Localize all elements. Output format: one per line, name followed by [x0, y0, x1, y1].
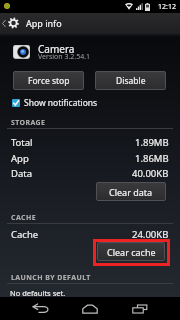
button[interactable]: Show notifications [9, 96, 104, 110]
staticText: App info [26, 17, 62, 29]
staticText: 1.86MB [135, 152, 169, 165]
staticText: 40.00KB [132, 167, 169, 180]
staticText: Cache [11, 228, 39, 241]
button[interactable]: Total [0, 134, 180, 149]
button[interactable]: Data [0, 165, 180, 180]
staticText: 24.00KB [132, 228, 169, 241]
staticText: Total [11, 136, 33, 149]
staticText: Camera [38, 42, 75, 56]
button[interactable]: Back [22, 297, 58, 320]
staticText: Clear data [109, 186, 153, 198]
button[interactable]: Cache [0, 226, 180, 241]
staticText: 12:12 [158, 2, 176, 12]
staticText: No defaults set. [10, 288, 66, 298]
button[interactable]: Clear data [96, 182, 166, 201]
staticText: Disable [116, 75, 146, 87]
staticText: LAUNCH BY DEFAULT [11, 273, 91, 283]
staticText: Data [11, 167, 33, 180]
staticText: Clear cache [107, 246, 156, 258]
button[interactable]: App [0, 150, 180, 165]
staticText: App [11, 152, 29, 165]
button[interactable]: Clear cache [97, 242, 165, 261]
button[interactable]: Disable [95, 71, 166, 90]
staticText: 1.89MB [135, 136, 169, 149]
staticText: Force stop [28, 75, 70, 87]
button[interactable]: Recent apps [122, 297, 158, 320]
button[interactable]: Force stop [13, 71, 84, 90]
staticText: Show notifications [24, 97, 98, 109]
staticText: STORAGE [11, 118, 46, 128]
button[interactable]: Navigate up [0, 13, 180, 34]
staticText: CACHE [11, 213, 36, 223]
staticText: Version 3.2.54.1 [38, 52, 91, 62]
button[interactable]: Home [72, 297, 108, 320]
